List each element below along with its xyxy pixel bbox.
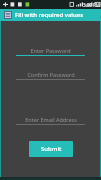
staticText: Enter Password — [30, 47, 71, 54]
staticText: Confirm Password — [27, 71, 75, 78]
button[interactable]: Confirm Password — [16, 69, 85, 80]
other: App icon — [4, 11, 12, 19]
staticText: 3:09 PM — [83, 2, 100, 8]
staticText: Fill with required values — [15, 11, 84, 19]
staticText: Submit — [41, 145, 62, 153]
button[interactable]: Submit — [29, 141, 73, 157]
button[interactable]: Enter Email Address — [16, 114, 85, 125]
button[interactable]: Enter Password — [16, 45, 85, 56]
staticText: Enter Email Address — [25, 116, 77, 123]
